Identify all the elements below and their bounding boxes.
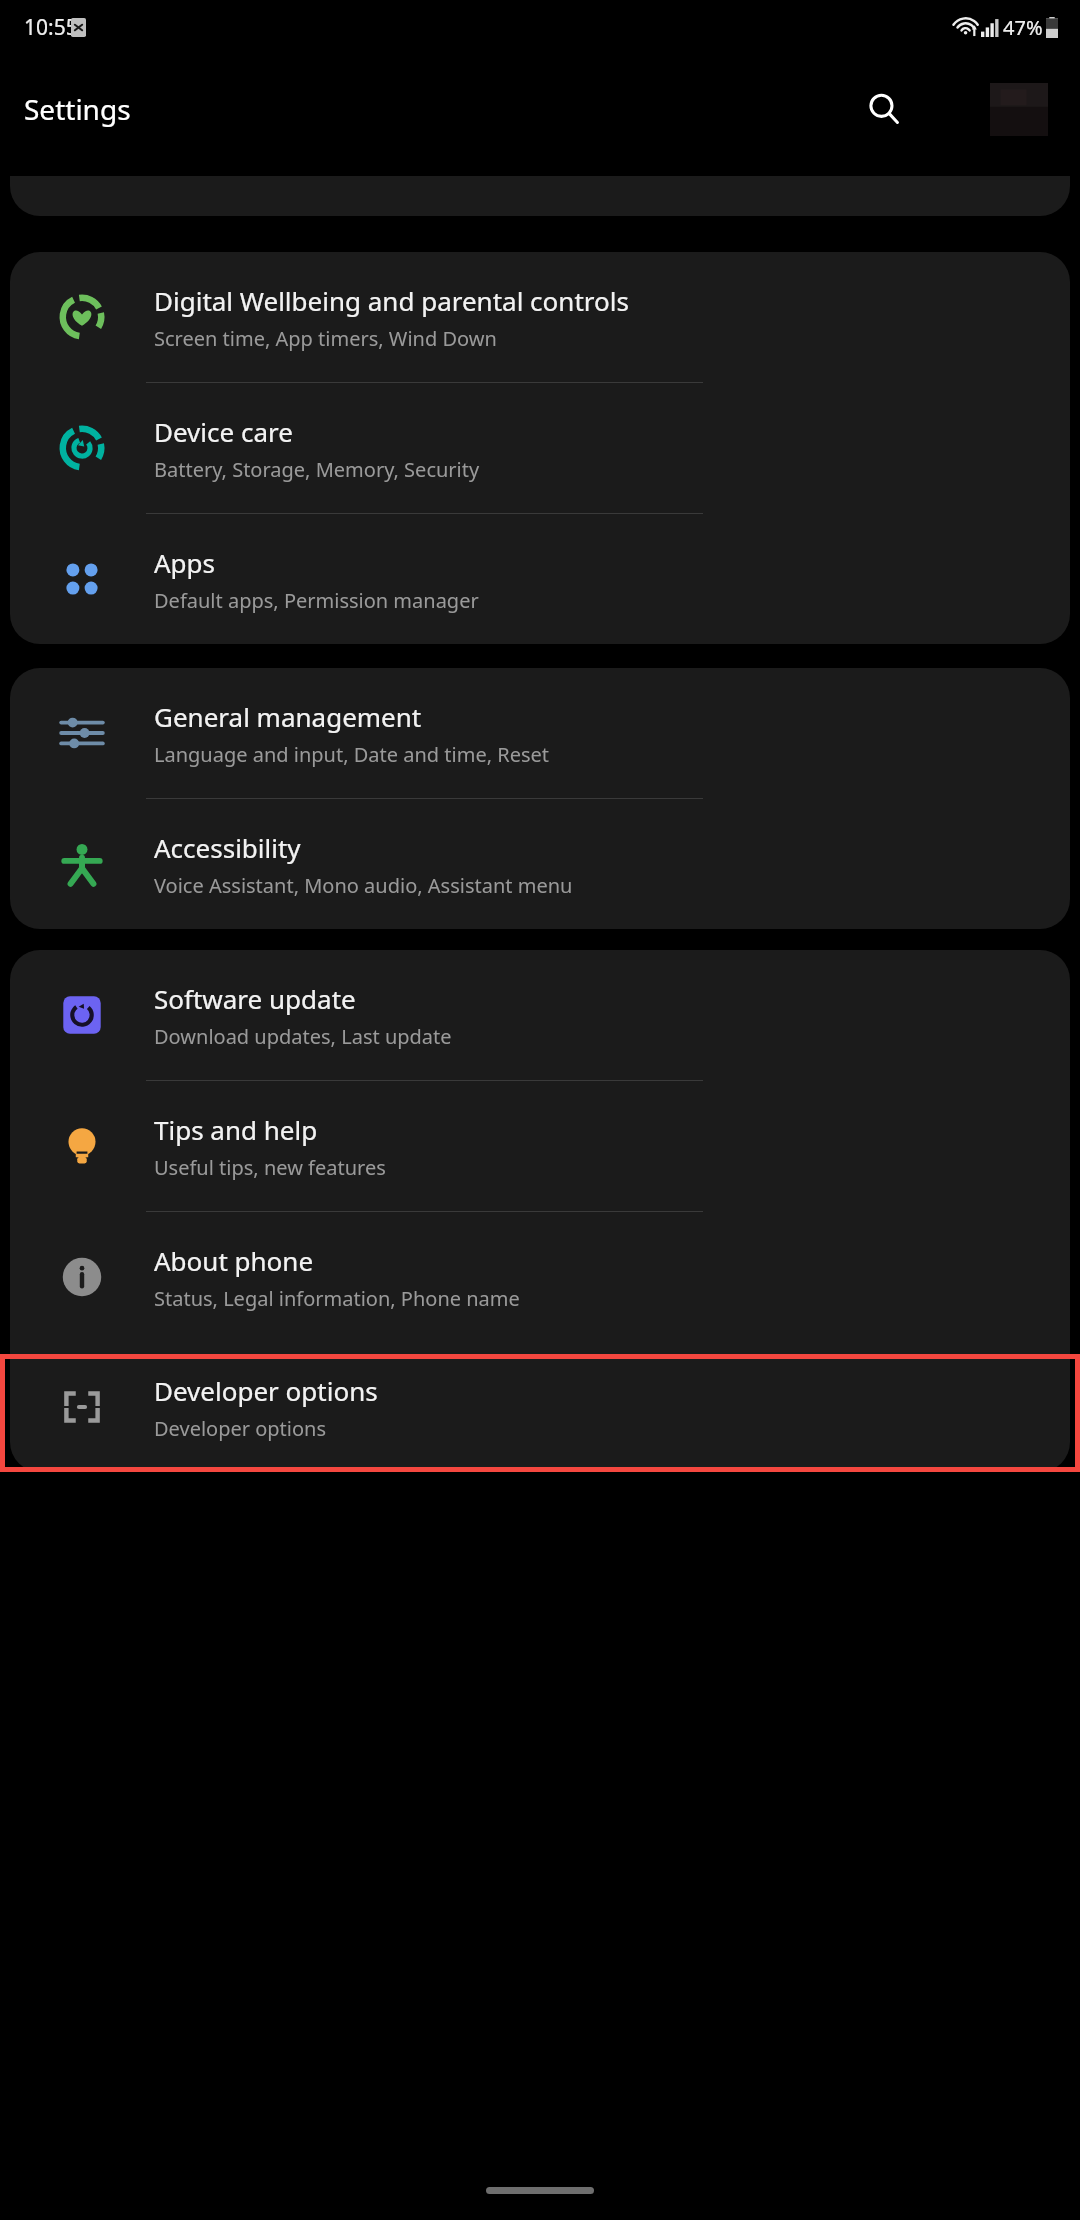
button[interactable]: Developer options bbox=[10, 1342, 1070, 1472]
button[interactable]: Accessibility bbox=[10, 799, 1070, 929]
staticText: Developer options bbox=[154, 1415, 327, 1442]
staticText: Software update bbox=[154, 981, 356, 1016]
button[interactable]: Search bbox=[857, 82, 911, 136]
button[interactable]: Device care bbox=[10, 383, 1070, 513]
button[interactable]: Software update bbox=[10, 950, 1070, 1080]
button[interactable]: General management bbox=[10, 668, 1070, 798]
staticText: Default apps, Permission manager bbox=[154, 587, 479, 614]
staticText: Language and input, Date and time, Reset bbox=[154, 741, 550, 768]
button[interactable]: About phone bbox=[10, 1212, 1070, 1342]
staticText: Download updates, Last update bbox=[154, 1023, 452, 1050]
staticText: 10:55 bbox=[24, 13, 78, 42]
button[interactable]: Apps bbox=[10, 514, 1070, 644]
staticText: Settings bbox=[24, 90, 131, 128]
button[interactable]: Home gesture handle bbox=[486, 2187, 594, 2194]
staticText: 47% bbox=[1003, 14, 1043, 41]
staticText: Digital Wellbeing and parental controls bbox=[154, 283, 629, 318]
staticText: Voice Assistant, Mono audio, Assistant m… bbox=[154, 872, 573, 899]
staticText: Battery, Storage, Memory, Security bbox=[154, 456, 480, 483]
staticText: Tips and help bbox=[154, 1112, 318, 1147]
staticText: Accessibility bbox=[154, 830, 301, 865]
button[interactable]: Digital Wellbeing and parental controls bbox=[10, 252, 1070, 382]
staticText: Useful tips, new features bbox=[154, 1154, 386, 1181]
staticText: General management bbox=[154, 699, 422, 734]
staticText: Developer options bbox=[154, 1373, 378, 1408]
staticText: About phone bbox=[154, 1243, 314, 1278]
staticText: Status, Legal information, Phone name bbox=[154, 1285, 520, 1312]
button[interactable]: Tips and help bbox=[10, 1081, 1070, 1211]
button[interactable]: Account bbox=[990, 83, 1048, 136]
staticText: Screen time, App timers, Wind Down bbox=[154, 325, 497, 352]
staticText: Apps bbox=[154, 545, 216, 580]
staticText: Device care bbox=[154, 414, 293, 449]
